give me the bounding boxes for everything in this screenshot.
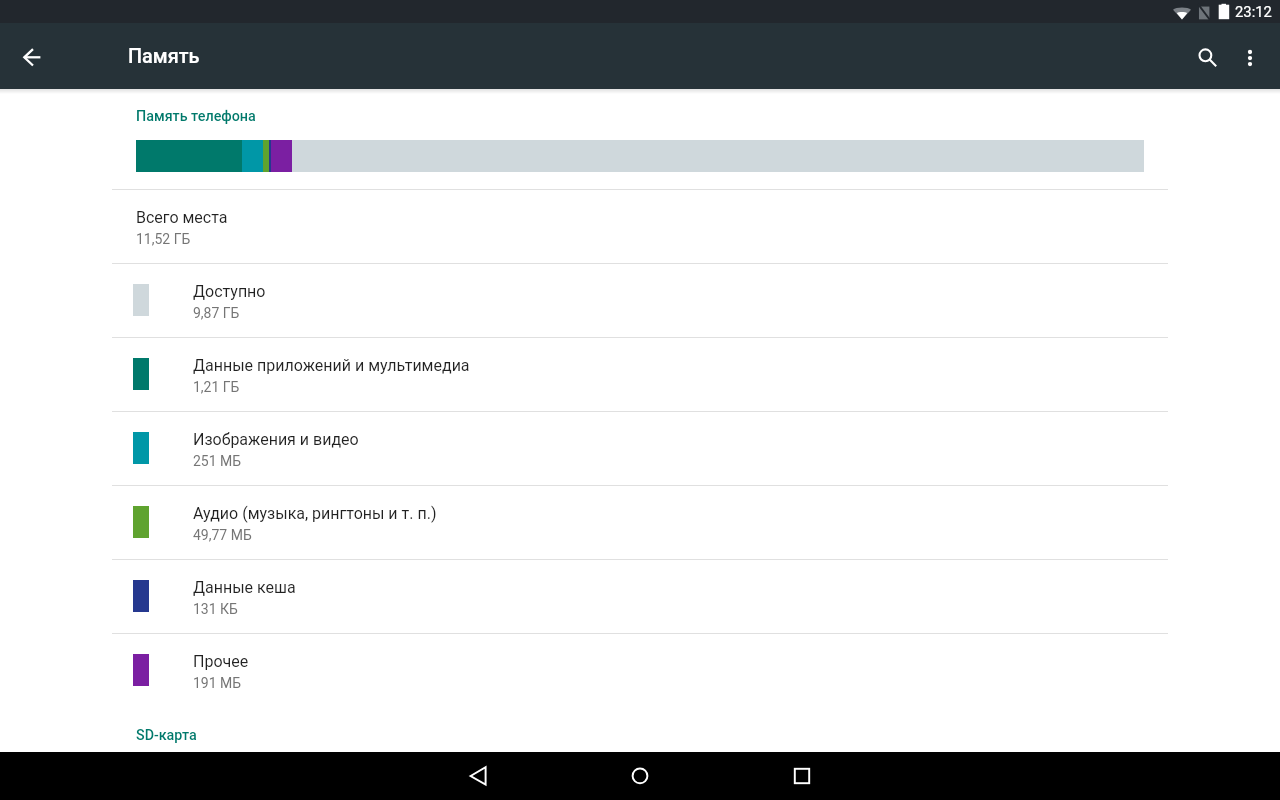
- button[interactable]: Прочее: [0, 634, 1280, 707]
- button[interactable]: Изображения и видео: [0, 412, 1280, 485]
- staticText: Память телефона: [136, 108, 256, 125]
- button[interactable]: Данные кеша: [0, 560, 1280, 633]
- staticText: Аудио (музыка, рингтоны и т. п.): [193, 504, 437, 523]
- button[interactable]: Данные приложений и мультимедиа: [0, 338, 1280, 411]
- staticText: Доступно: [193, 282, 266, 301]
- staticText: SD-карта: [136, 727, 197, 744]
- button[interactable]: Back: [8, 32, 56, 80]
- staticText: 11,52 ГБ: [136, 231, 191, 247]
- button[interactable]: Search: [1183, 33, 1231, 81]
- button[interactable]: Recents: [777, 752, 825, 800]
- button[interactable]: Аудио (музыка, рингтоны и т. п.): [0, 486, 1280, 559]
- staticText: 9,87 ГБ: [193, 305, 240, 321]
- staticText: Память: [128, 45, 200, 68]
- staticText: Изображения и видео: [193, 430, 359, 449]
- staticText: 49,77 МБ: [193, 527, 252, 543]
- staticText: 23:12: [1235, 3, 1272, 20]
- staticText: Данные кеша: [193, 578, 296, 597]
- button[interactable]: Home: [615, 752, 663, 800]
- staticText: Всего места: [136, 208, 228, 227]
- button[interactable]: Всего места: [0, 190, 1280, 263]
- staticText: 1,21 ГБ: [193, 379, 240, 395]
- staticText: 191 МБ: [193, 675, 242, 691]
- staticText: 131 КБ: [193, 601, 238, 617]
- button[interactable]: Back: [455, 752, 503, 800]
- staticText: Данные приложений и мультимедиа: [193, 356, 470, 375]
- button[interactable]: Доступно: [0, 264, 1280, 337]
- staticText: 251 МБ: [193, 453, 242, 469]
- button[interactable]: More options: [1226, 33, 1274, 81]
- staticText: Прочее: [193, 652, 249, 671]
